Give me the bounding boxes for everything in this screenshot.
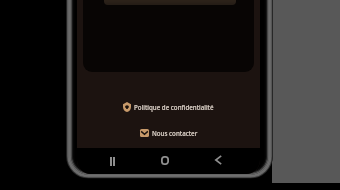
button[interactable]: Back	[207, 149, 229, 171]
staticText: Politique de confidentialité	[134, 103, 214, 111]
button[interactable]: Nous contacter	[138, 128, 200, 138]
button[interactable]: Politique de confidentialité	[121, 101, 216, 113]
button[interactable]: Recent apps	[101, 150, 123, 172]
staticText: Nous contacter	[152, 129, 198, 137]
button[interactable]: Home	[154, 149, 176, 171]
